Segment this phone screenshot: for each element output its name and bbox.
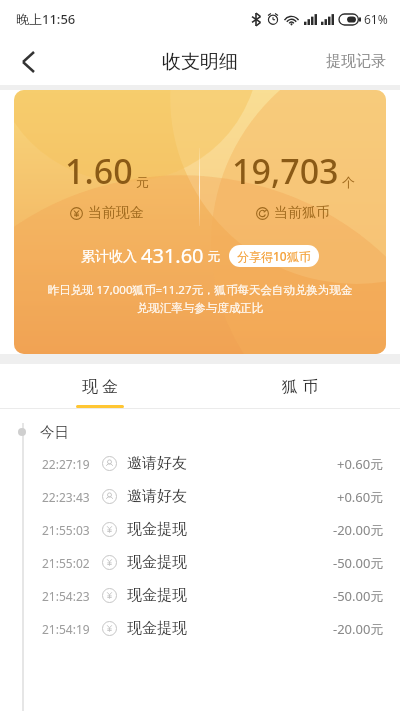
staticText: 狐 币	[282, 375, 319, 397]
button[interactable]: 提现记录	[312, 42, 400, 81]
staticText: 提现记录	[326, 52, 386, 71]
button[interactable]: 现 金	[0, 364, 200, 408]
staticText: 61%	[364, 11, 388, 27]
staticText: 当前狐币	[274, 204, 330, 222]
staticText: 累计收入	[81, 246, 141, 265]
staticText: +0.60元	[337, 488, 384, 506]
button[interactable]: 21:54:23	[0, 579, 400, 612]
staticText: 1.60	[65, 148, 133, 194]
staticText: -50.00元	[333, 554, 384, 572]
button[interactable]: 21:55:02	[0, 546, 400, 579]
staticText: 收支明细	[162, 50, 238, 74]
button[interactable]: 21:54:19	[0, 612, 400, 645]
staticText: 19,703	[232, 148, 339, 194]
button[interactable]: 分享得10狐币	[229, 245, 319, 267]
staticText: 现金提现	[127, 553, 187, 572]
button[interactable]: 21:55:03	[0, 513, 400, 546]
staticText: -50.00元	[333, 587, 384, 605]
staticText: 22:27:19	[42, 456, 90, 472]
staticText: -20.00元	[333, 521, 384, 539]
button[interactable]: Back	[6, 40, 50, 84]
staticText: 现 金	[82, 375, 119, 397]
staticText: 现金提现	[127, 520, 187, 539]
staticText: 昨日兑现 17,000狐币=11.27元，狐币每天会自动兑换为现金 兑现汇率与参…	[32, 282, 368, 316]
staticText: 邀请好友	[127, 454, 187, 473]
button[interactable]: 22:23:43	[0, 480, 400, 513]
staticText: 元	[136, 174, 149, 190]
staticText: -20.00元	[333, 620, 384, 638]
staticText: 21:54:23	[42, 588, 90, 604]
staticText: 21:55:03	[42, 522, 90, 538]
staticText: 邀请好友	[127, 487, 187, 506]
staticText: 22:23:43	[42, 489, 90, 505]
staticText: 现金提现	[127, 586, 187, 605]
button[interactable]: 狐 币	[200, 364, 400, 408]
button[interactable]: 1.60	[14, 90, 386, 354]
staticText: +0.60元	[337, 455, 384, 473]
staticText: 元	[204, 247, 221, 265]
staticText: 当前现金	[88, 204, 144, 222]
staticText: 个	[342, 174, 355, 190]
staticText: 晚上11:56	[16, 10, 76, 28]
staticText: 21:54:19	[42, 621, 90, 637]
staticText: 21:55:02	[42, 555, 90, 571]
staticText: 现金提现	[127, 619, 187, 638]
button[interactable]: 22:27:19	[0, 447, 400, 480]
staticText: 今日	[40, 423, 69, 441]
staticText: 431.60	[141, 242, 204, 269]
staticText: 分享得10狐币	[237, 248, 311, 264]
